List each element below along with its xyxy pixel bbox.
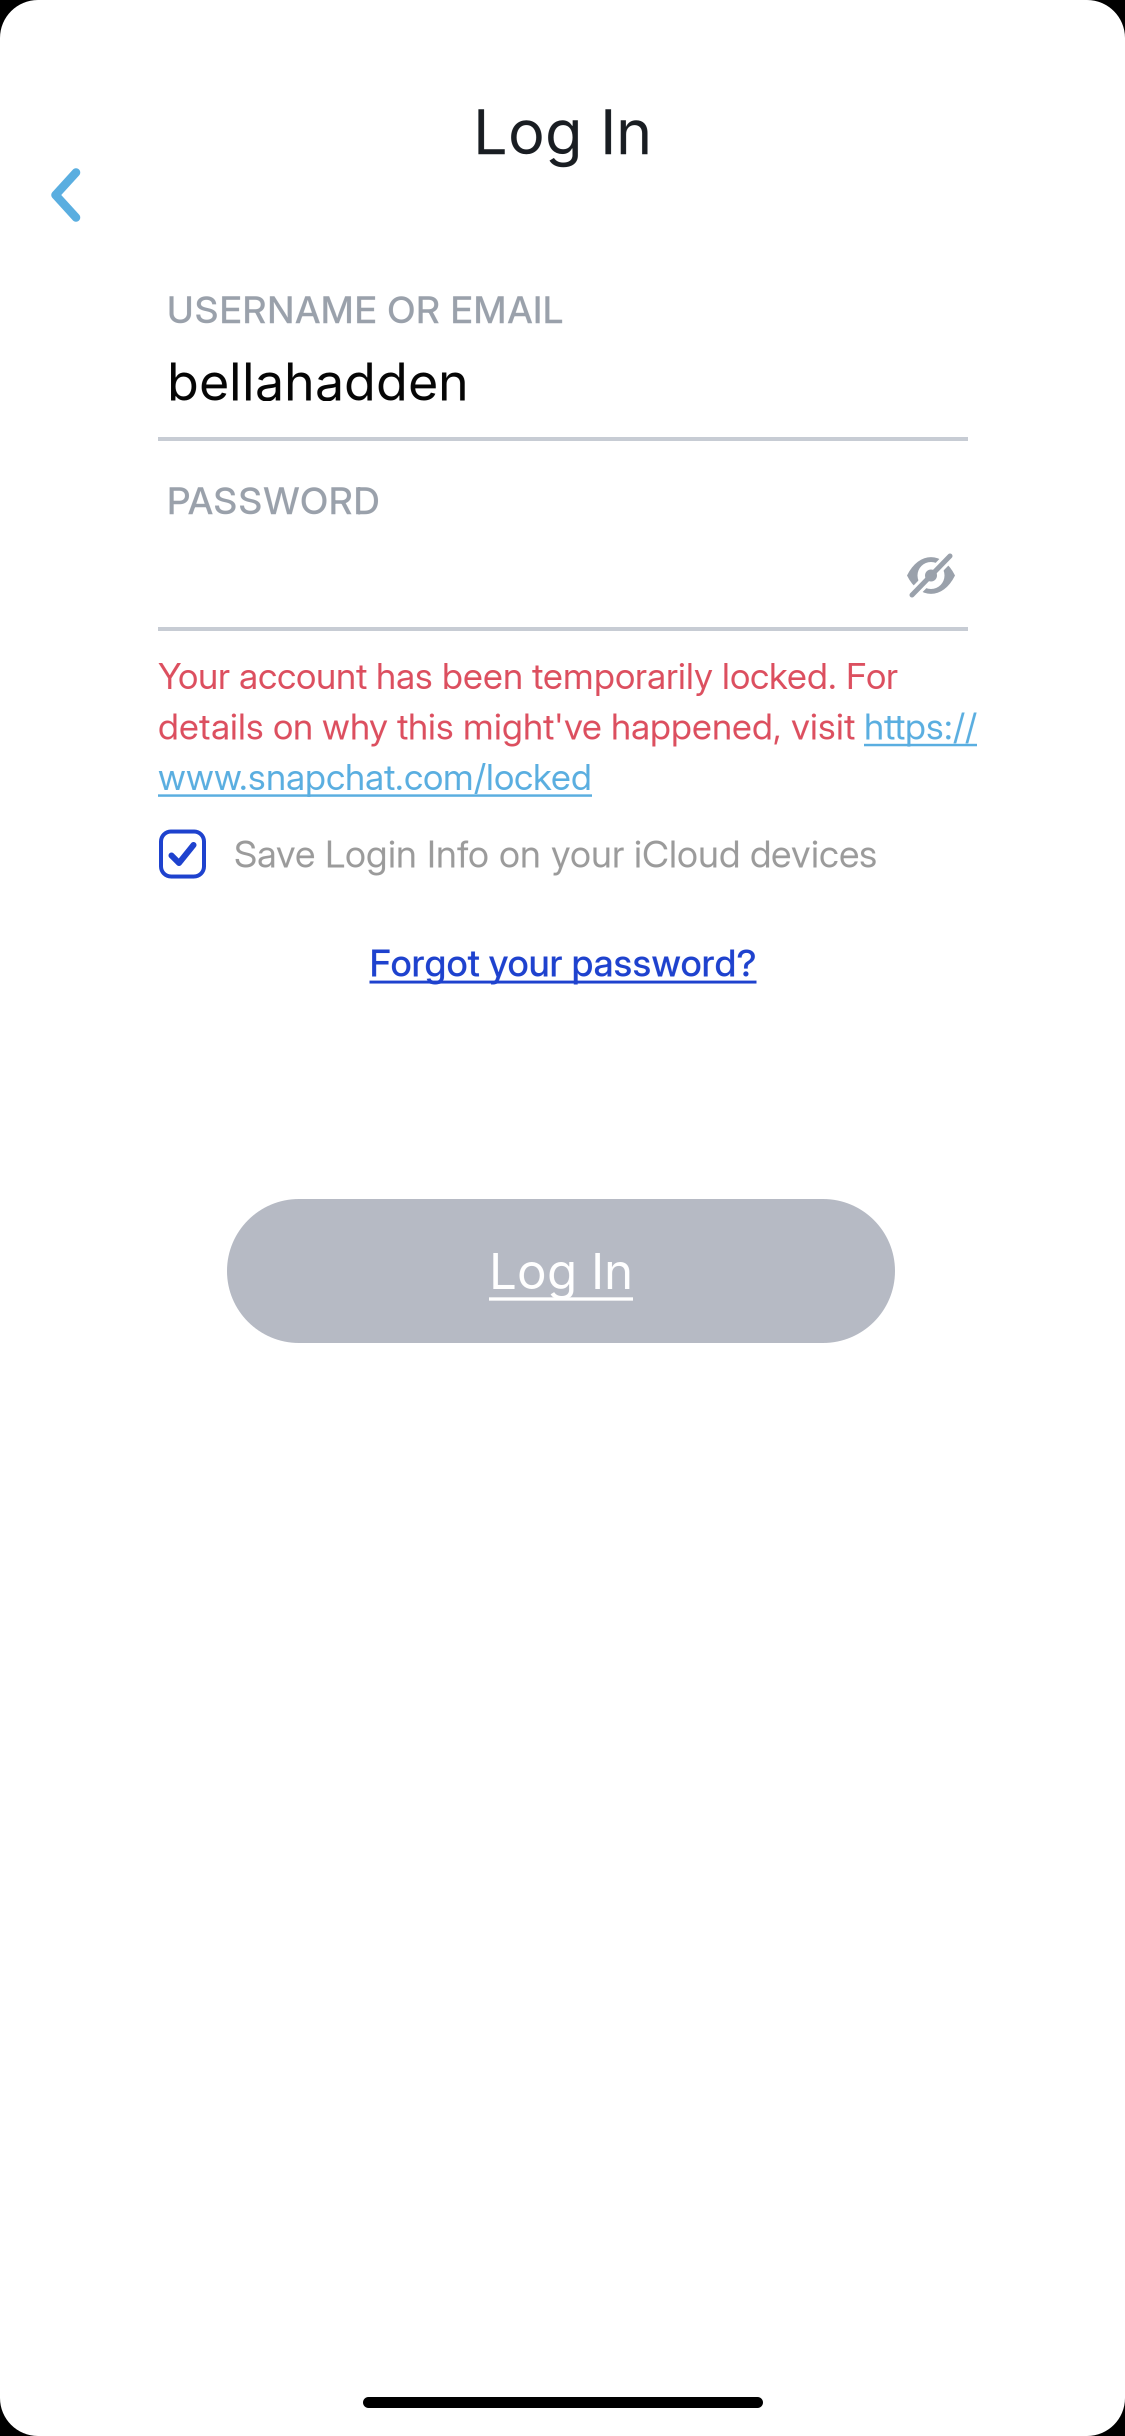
button[interactable]: Show password [883,528,979,624]
staticText: Log In [489,1241,633,1301]
button[interactable]: Save Login Info on your iCloud devices [159,822,969,886]
staticText: USERNAME OR EMAIL [167,287,563,332]
button[interactable]: Log In [227,1199,895,1343]
button[interactable]: PASSWORD [158,478,968,631]
staticText: bellahadden [167,350,469,413]
staticText: PASSWORD [167,478,380,523]
staticText: Forgot your password? [369,940,756,986]
staticText: Your account has been temporarily locked… [158,654,977,799]
staticText: Save Login Info on your iCloud devices [234,831,877,877]
button[interactable]: https://www.snapchat.com/locked [158,759,592,799]
button[interactable]: Back [10,139,122,251]
button[interactable]: USERNAME OR EMAIL [158,287,968,441]
button[interactable]: Forgot your password? [158,930,968,996]
staticText: Log In [473,95,652,169]
